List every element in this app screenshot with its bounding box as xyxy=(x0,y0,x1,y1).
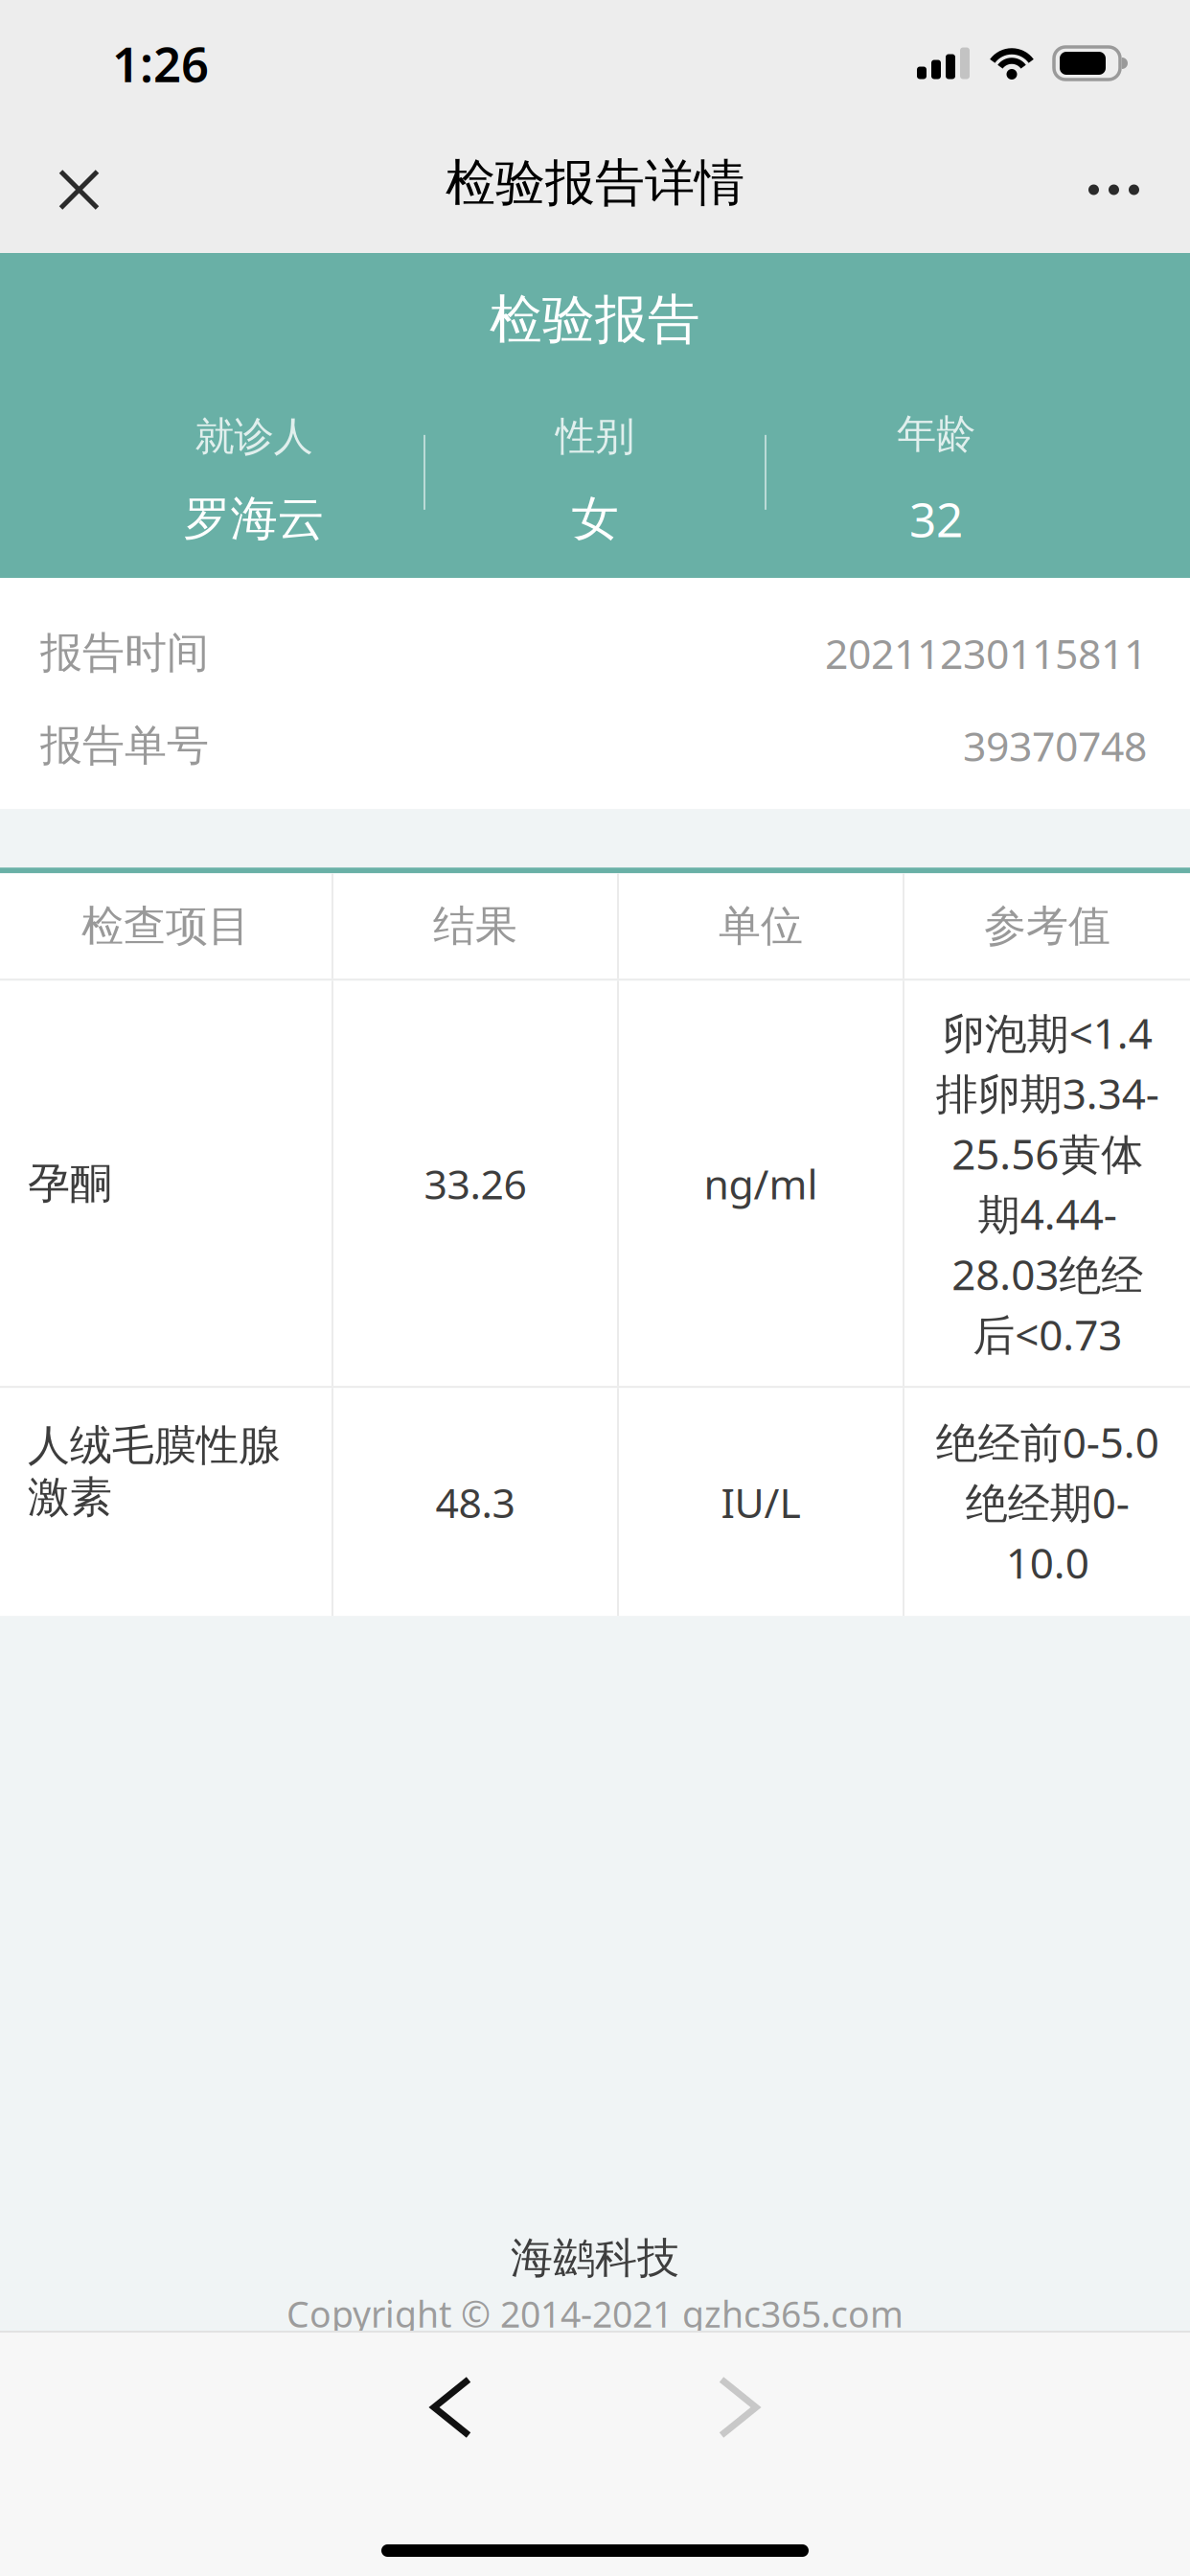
button[interactable]: Forward xyxy=(664,2347,813,2468)
staticText: 参考值 xyxy=(984,900,1110,952)
staticText: 罗海云 xyxy=(183,490,324,548)
staticText: 结果 xyxy=(433,900,517,952)
staticText: 报告时间 xyxy=(40,627,209,679)
staticText: 孕酮 xyxy=(28,1157,112,1209)
staticText: 年龄 xyxy=(897,410,975,459)
staticText: 检验报告详情 xyxy=(446,152,744,214)
staticText: Copyright © 2014-2021 gzhc365.com xyxy=(286,2290,904,2337)
staticText: 39370748 xyxy=(963,718,1147,773)
staticText: 检验报告 xyxy=(490,287,700,352)
staticText: 人绒毛膜性腺 激素 xyxy=(28,1420,281,1523)
staticText: ng/ml xyxy=(704,1156,818,1211)
staticText: 32 xyxy=(909,487,963,550)
staticText: 33.26 xyxy=(424,1156,526,1211)
staticText: 卵泡期<1.4 排卵期3.34- 25.56黄体 期4.44- 28.03绝经 … xyxy=(936,1005,1159,1362)
staticText: IU/L xyxy=(721,1475,801,1529)
staticText: 20211230115811 xyxy=(825,626,1147,680)
staticText: 单位 xyxy=(719,900,803,952)
staticText: 报告单号 xyxy=(40,720,209,771)
staticText: 海鹚科技 xyxy=(511,2232,679,2284)
staticText: 1:26 xyxy=(112,31,209,96)
staticText: 检查项目 xyxy=(81,900,250,952)
button[interactable]: Close xyxy=(0,127,138,253)
staticText: 性别 xyxy=(556,412,634,461)
staticText: 就诊人 xyxy=(195,412,313,461)
staticText: 绝经前0-5.0 绝经期0- 10.0 xyxy=(936,1414,1159,1590)
button[interactable]: More xyxy=(1050,132,1190,248)
staticText: 女 xyxy=(572,490,618,548)
button[interactable]: Back xyxy=(377,2347,526,2468)
staticText: 48.3 xyxy=(435,1475,515,1529)
